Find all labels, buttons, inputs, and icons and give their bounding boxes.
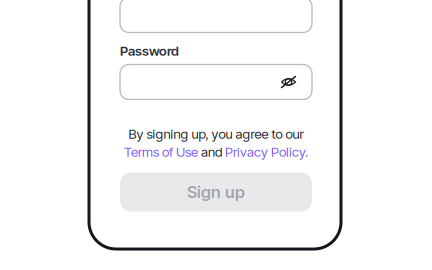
- button[interactable]: Sign up: [120, 172, 312, 211]
- staticText: Terms of Use: [124, 144, 198, 160]
- staticText: Password: [120, 43, 179, 59]
- staticText: Sign up: [187, 182, 245, 202]
- button[interactable]: Terms of Use: [124, 144, 198, 160]
- staticText: By signing up, you agree to our: [128, 126, 303, 142]
- staticText: Privacy Policy.: [225, 144, 308, 160]
- button[interactable]: Show password: [272, 66, 304, 98]
- staticText: and: [198, 144, 225, 160]
- button[interactable]: Privacy Policy.: [225, 144, 308, 160]
